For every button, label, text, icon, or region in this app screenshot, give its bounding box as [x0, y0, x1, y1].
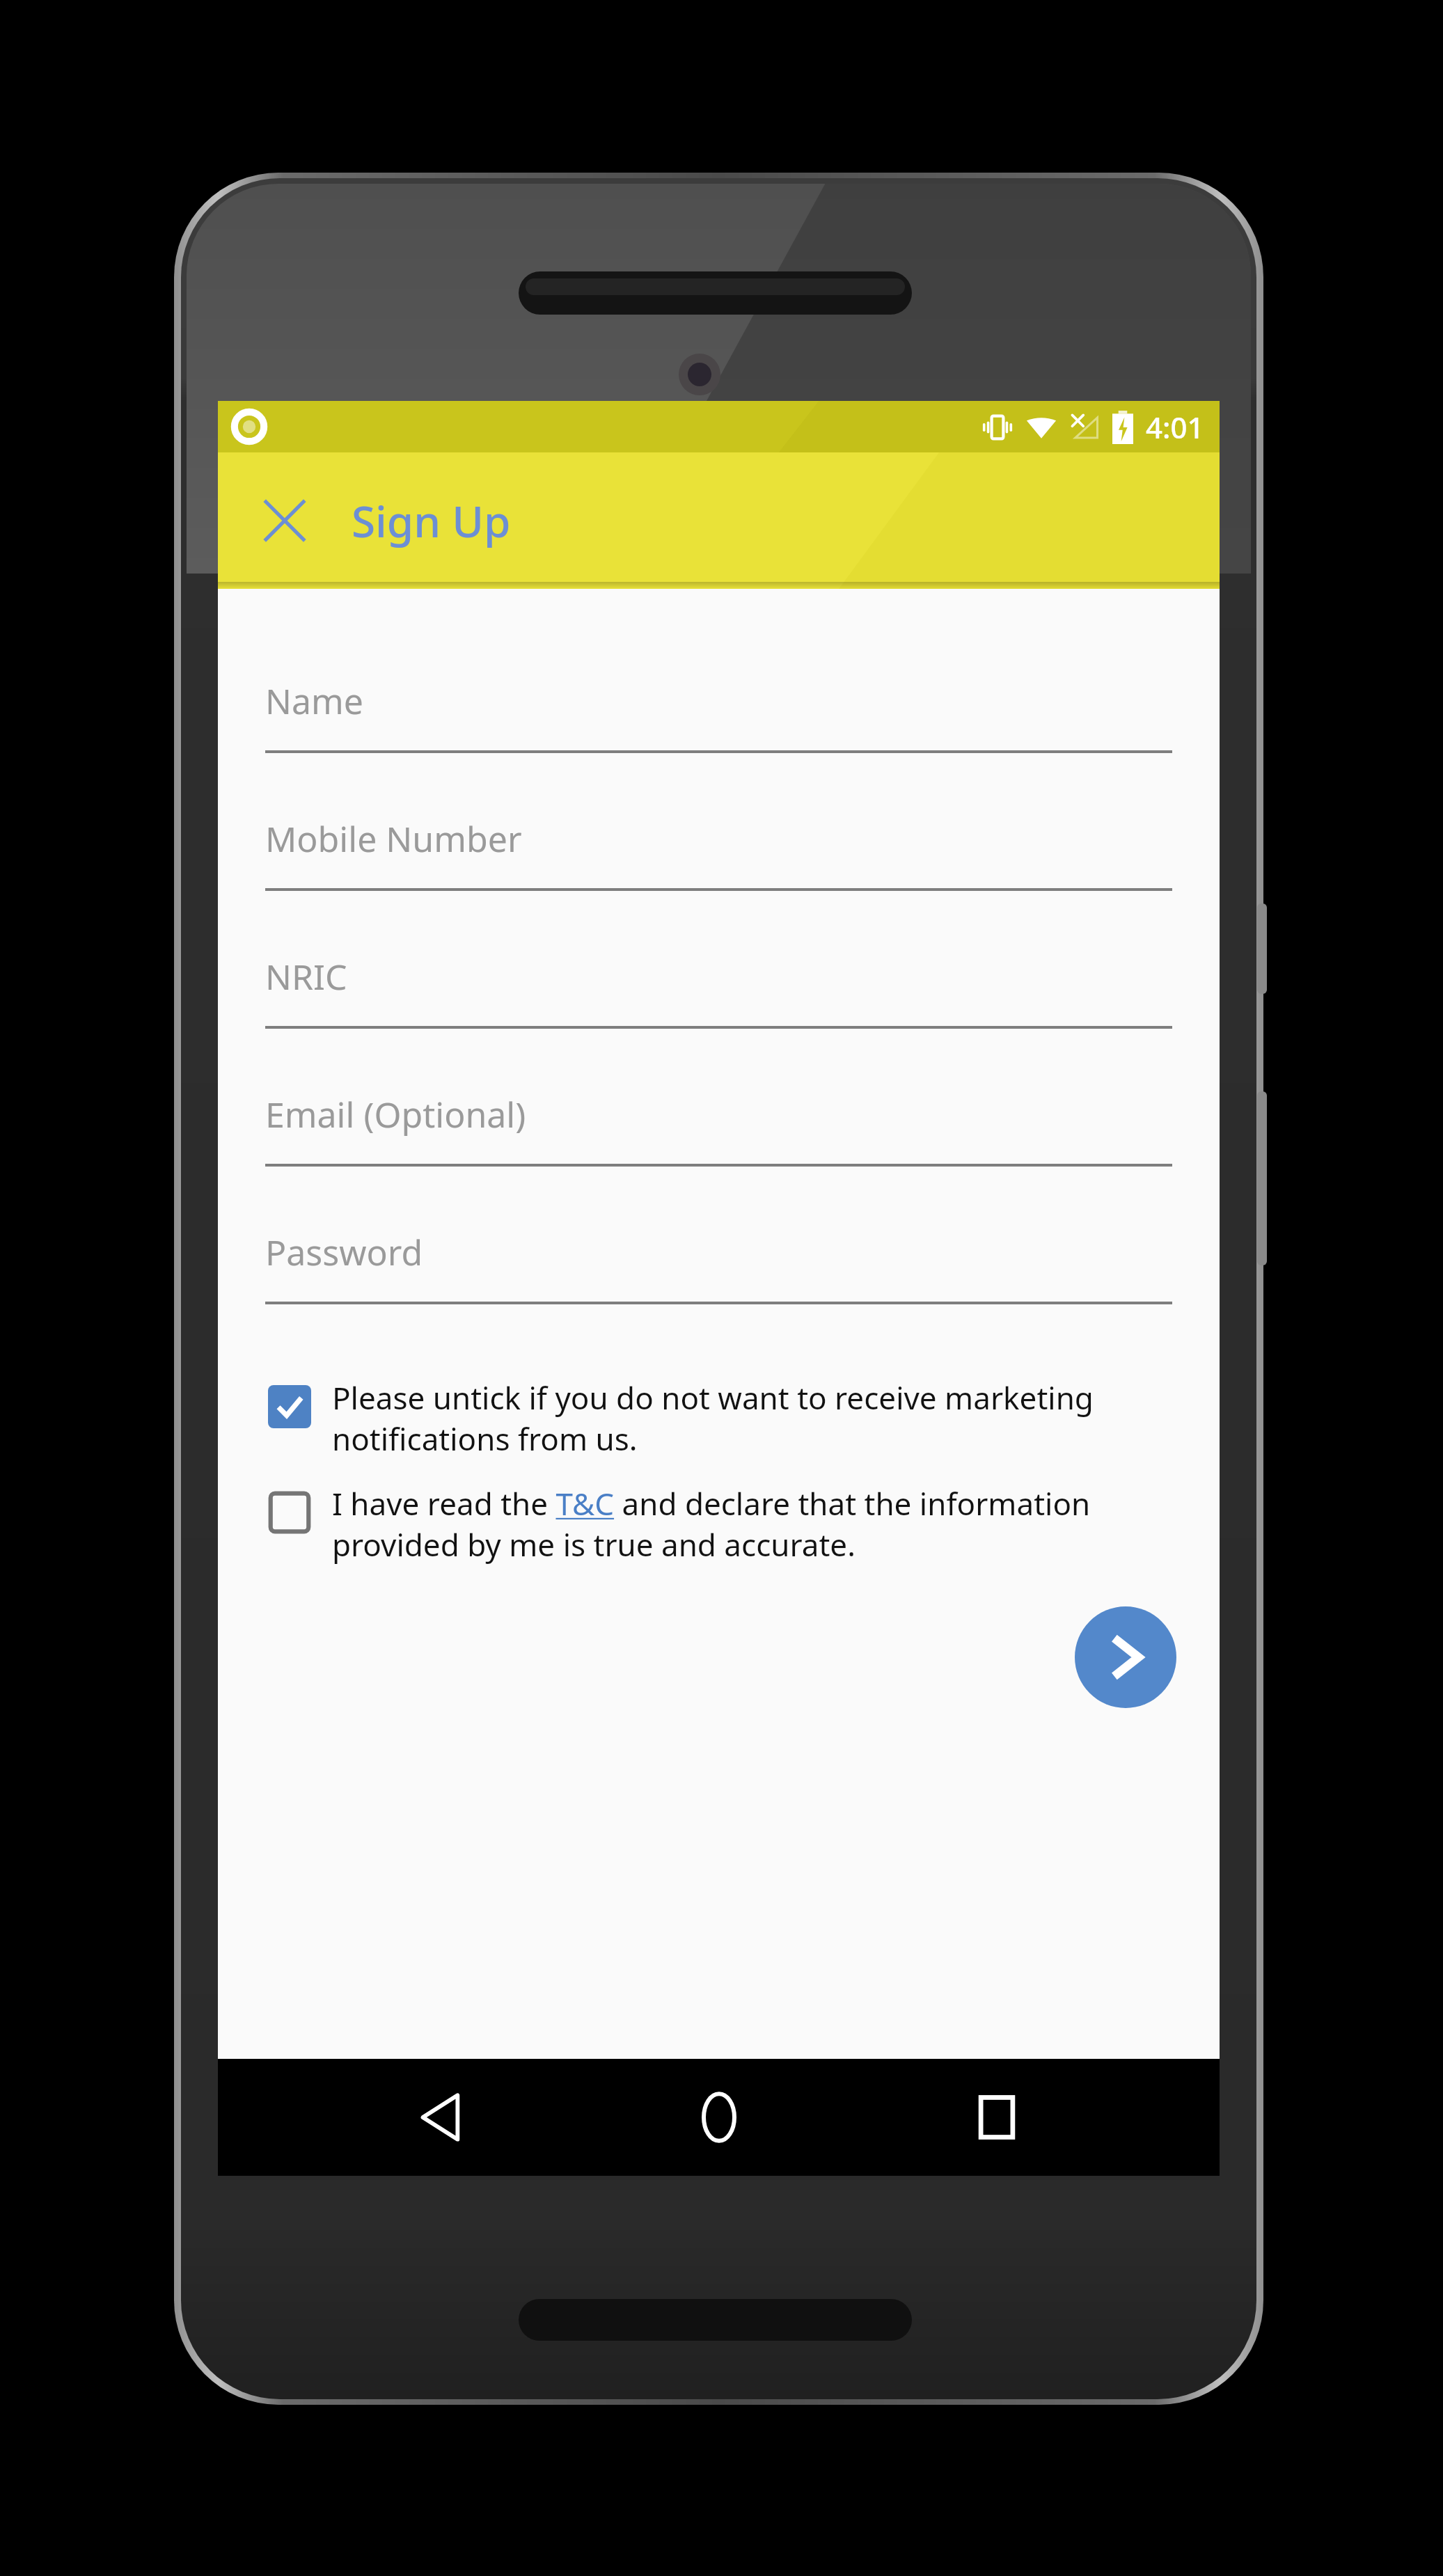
staticText: NRIC — [265, 953, 347, 1000]
button[interactable]: Close — [251, 487, 318, 554]
staticText: Name — [265, 677, 363, 725]
button[interactable]: Please untick if you do not want to rece… — [268, 1377, 1175, 1459]
staticText: Mobile Number — [265, 815, 522, 862]
button[interactable]: I have read the T&C and declare that the… — [268, 1483, 1175, 1565]
button[interactable]: NRIC — [265, 927, 1172, 1065]
button[interactable]: Name — [265, 651, 1172, 789]
staticText: Email (Optional) — [265, 1091, 526, 1138]
staticText: Sign Up — [352, 491, 511, 550]
staticText: Please untick if you do not want to rece… — [332, 1377, 1094, 1459]
staticText: Password — [265, 1228, 423, 1276]
button[interactable]: Mobile Number — [265, 789, 1172, 927]
button[interactable]: Home — [663, 2059, 775, 2176]
button[interactable]: Email (Optional) — [265, 1065, 1172, 1203]
button[interactable]: Next — [1075, 1606, 1176, 1708]
staticText: 4:01 — [1146, 407, 1204, 447]
staticText: I have read the T&C and declare that the… — [332, 1483, 1091, 1565]
button[interactable]: Recent apps — [941, 2059, 1052, 2176]
button[interactable]: Back — [385, 2059, 496, 2176]
button[interactable]: Password — [265, 1203, 1172, 1341]
